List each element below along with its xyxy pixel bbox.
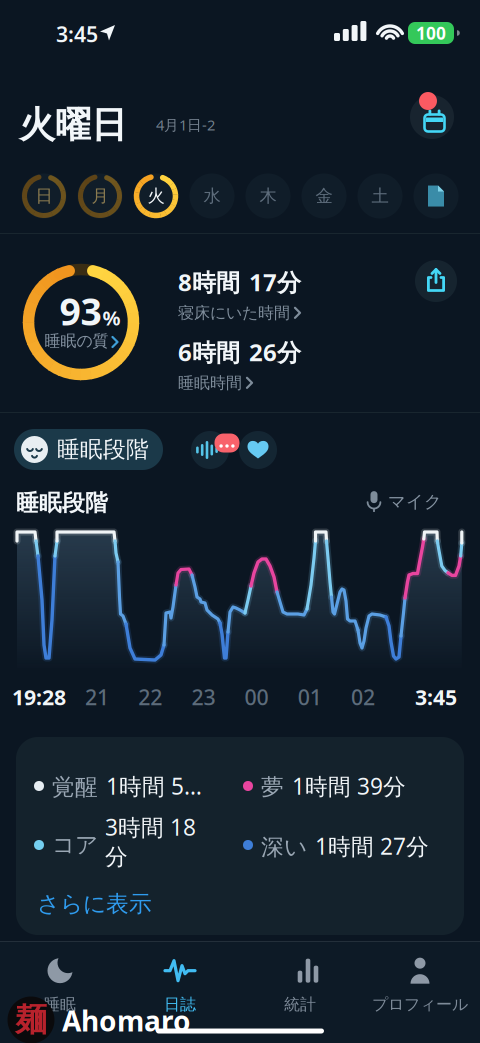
staticText: マイク — [388, 491, 442, 512]
button[interactable]: 月 — [77, 173, 122, 218]
staticText: 3時間 18 — [105, 812, 196, 842]
button[interactable]: 木 — [245, 173, 290, 218]
button[interactable]: 日 — [21, 173, 66, 218]
staticText: 日 — [35, 185, 52, 207]
button[interactable]: さらに表示 — [37, 890, 152, 918]
staticText: 17分 — [249, 266, 301, 298]
staticText: 分 — [105, 843, 128, 871]
staticText: 睡眠段階 — [16, 489, 108, 517]
staticText: 3:45 — [56, 20, 98, 48]
staticText: 6時間 — [178, 336, 240, 368]
staticText: 月 — [91, 185, 108, 207]
staticText: 土 — [371, 185, 388, 207]
staticText: 01 — [298, 683, 322, 711]
button[interactable]: 金 — [301, 173, 346, 218]
staticText: 1時間 39分 — [292, 771, 406, 801]
button[interactable]: 火 — [133, 173, 178, 218]
button[interactable]: いびき — [191, 431, 229, 469]
staticText: 1時間 27分 — [315, 831, 429, 861]
staticText: 02 — [351, 683, 375, 711]
staticText: 水 — [203, 185, 220, 207]
staticText: さらに表示 — [37, 890, 152, 918]
staticText: 19:28 — [12, 683, 66, 711]
button[interactable]: 共有 — [415, 260, 457, 302]
staticText: 睡眠の質 — [44, 331, 108, 351]
button[interactable]: 水 — [189, 173, 234, 218]
button[interactable]: 8時間 — [0, 0, 123, 32]
button[interactable]: 睡眠段階 — [14, 429, 163, 470]
staticText: 21 — [85, 683, 109, 711]
staticText: 木 — [259, 185, 276, 207]
staticText: 金 — [315, 185, 332, 207]
staticText: 睡眠段階 — [57, 436, 149, 463]
staticText: % — [102, 304, 120, 331]
button[interactable]: 6時間 — [0, 0, 123, 32]
staticText: Ahomaro — [62, 1002, 191, 1039]
staticText: 夢 — [261, 773, 284, 801]
staticText: 00 — [245, 683, 269, 711]
staticText: 3:45 — [415, 683, 457, 711]
button[interactable]: 93 — [16, 257, 146, 387]
staticText: 26分 — [249, 336, 301, 368]
staticText: 22 — [138, 683, 162, 711]
staticText: 火曜日 — [19, 103, 127, 147]
staticText: 麺 — [15, 1000, 47, 1040]
staticText: 4月1日-2 — [156, 115, 215, 134]
button[interactable]: ノート — [413, 173, 458, 218]
button[interactable]: 統計 — [255, 954, 345, 1018]
button[interactable]: 心拍数 — [239, 431, 277, 469]
staticText: コア — [52, 831, 98, 859]
staticText: 睡眠時間 — [178, 373, 242, 393]
staticText: 火 — [147, 185, 164, 207]
staticText: 深い — [261, 833, 307, 861]
staticText: 覚醒 — [52, 773, 98, 801]
button[interactable]: 土 — [357, 173, 402, 218]
staticText: プロフィール — [372, 995, 468, 1014]
staticText: 統計 — [284, 995, 316, 1014]
button[interactable]: プロフィール — [354, 954, 480, 1018]
staticText: 8時間 — [178, 266, 240, 298]
staticText: 1時間 5… — [106, 771, 202, 801]
staticText: 93 — [59, 286, 101, 336]
staticText: 日誌 — [164, 995, 196, 1014]
staticText: 寝床にいた時間 — [178, 303, 290, 323]
button[interactable]: 日誌 — [135, 954, 225, 1018]
button[interactable]: カレンダー — [410, 95, 454, 139]
button[interactable]: 睡眠 — [15, 954, 105, 1018]
staticText: 睡眠 — [44, 995, 76, 1014]
staticText: 100 — [416, 21, 446, 44]
staticText: 23 — [191, 683, 215, 711]
